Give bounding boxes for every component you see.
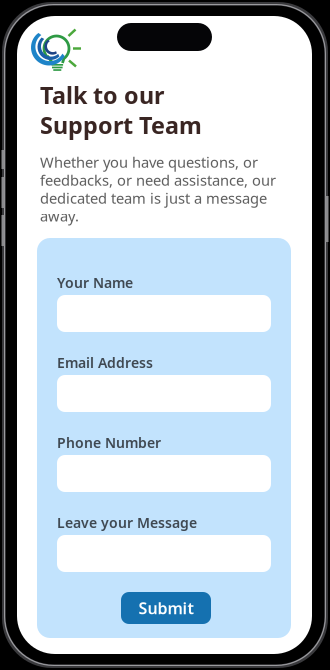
staticText: Support Team (40, 109, 202, 141)
staticText: Leave your Message (57, 513, 197, 532)
staticText: Email Address (57, 353, 153, 372)
button[interactable]: Submit (121, 592, 211, 624)
staticText: Submit (138, 597, 193, 619)
staticText: Phone Number (57, 433, 161, 452)
staticText: Whether you have questions, or feedbacks… (40, 152, 276, 226)
staticText: Talk to our (40, 79, 164, 111)
staticText: Your Name (57, 273, 133, 292)
